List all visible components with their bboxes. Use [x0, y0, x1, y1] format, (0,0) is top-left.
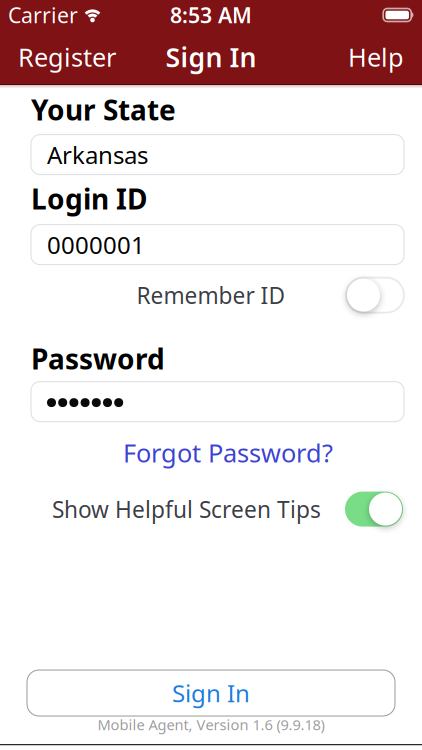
staticText: Remember ID [136, 280, 285, 310]
staticText: Help [348, 40, 404, 74]
staticText: Register [18, 40, 116, 74]
staticText: Sign In [165, 39, 256, 75]
staticText: Carrier [8, 1, 78, 29]
button[interactable]: Forgot Password? [123, 436, 333, 469]
staticText: 8:53 AM [170, 1, 252, 29]
staticText: Mobile Agent, Version 1.6 (9.9.18) [97, 715, 324, 734]
button[interactable]: Register [18, 40, 116, 74]
button[interactable]: Remember ID [346, 278, 404, 313]
button[interactable]: Sign In [27, 670, 395, 716]
button[interactable]: Help [348, 40, 404, 74]
staticText: Your State [31, 91, 176, 128]
staticText: Arkansas [47, 139, 148, 171]
staticText: 0000001 [47, 229, 145, 261]
staticText: Forgot Password? [123, 436, 333, 469]
staticText: Login ID [31, 180, 147, 217]
staticText: Sign In [172, 677, 250, 709]
button[interactable]: Show Helpful Screen Tips [345, 492, 403, 527]
staticText: Password [31, 340, 165, 377]
staticText: Show Helpful Screen Tips [52, 494, 321, 524]
